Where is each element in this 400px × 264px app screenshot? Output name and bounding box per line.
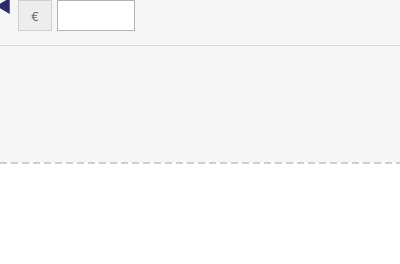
button[interactable]: Back xyxy=(0,0,18,31)
button[interactable] xyxy=(57,0,135,31)
staticText: € xyxy=(31,7,39,25)
button[interactable]: € xyxy=(18,0,52,31)
